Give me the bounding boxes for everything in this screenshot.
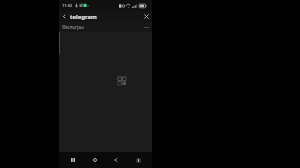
button[interactable]: Back bbox=[59, 11, 70, 22]
button[interactable]: Фильтры bbox=[59, 22, 152, 32]
button[interactable]: Home bbox=[88, 153, 102, 167]
button[interactable]: Recent apps bbox=[66, 153, 80, 167]
button[interactable]: Back bbox=[109, 153, 123, 167]
staticText: telegram bbox=[70, 13, 141, 21]
button[interactable]: Loading placeholder bbox=[117, 76, 127, 86]
staticText: Фильтры bbox=[62, 24, 142, 31]
button[interactable]: Screenshot bbox=[131, 153, 145, 167]
staticText: 11:02 bbox=[62, 3, 73, 8]
button[interactable]: Close bbox=[141, 11, 152, 22]
